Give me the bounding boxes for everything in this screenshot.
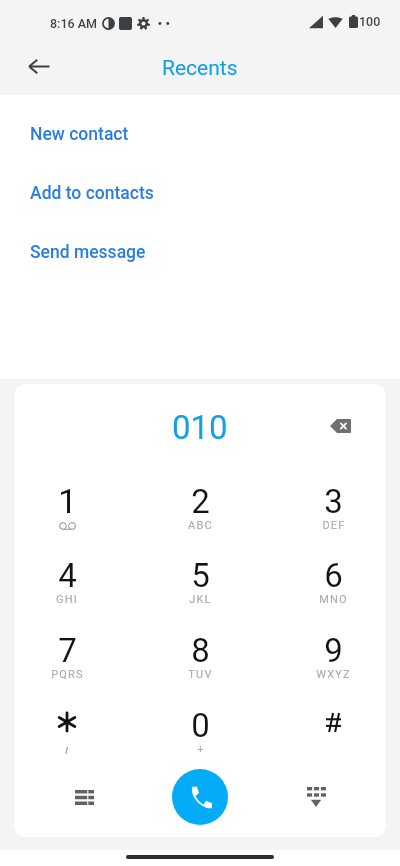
staticText: Send message [30,242,146,263]
button[interactable]: Send message [0,223,400,282]
button[interactable]: 4 [0,556,134,631]
button[interactable]: 3 [267,482,400,557]
staticText: 1 [58,482,77,521]
staticText: + [197,743,205,756]
staticText: MNO [319,593,348,606]
button[interactable]: New contact [0,105,400,164]
staticText: 7 [58,631,77,670]
button[interactable]: Call [172,769,228,825]
staticText: PQRS [51,668,84,681]
staticText: 9 [324,631,343,670]
staticText: 010 [172,408,228,447]
staticText: 0 [191,706,210,745]
button[interactable]: 0 [134,706,267,781]
staticText: 100 [359,14,381,29]
button[interactable]: 1 [0,482,134,557]
staticText: 2 [191,482,210,521]
button[interactable]: 8 [134,631,267,706]
button[interactable]: Add to contacts [0,164,400,223]
staticText: 5 [191,556,210,595]
button[interactable]: 2 [134,482,267,557]
staticText: Add to contacts [30,183,154,204]
button[interactable]: 6 [267,556,400,631]
button[interactable]: Backspace [318,403,363,448]
staticText: 8 [191,631,210,670]
staticText: 4 [58,556,77,595]
staticText: WXYZ [316,668,351,681]
staticText: Recents [162,56,238,81]
button[interactable]: Contacts [60,773,108,821]
button[interactable] [0,706,134,781]
staticText: 3 [324,482,343,521]
staticText: DEF [322,519,346,532]
staticText: 8:16 AM [50,16,98,31]
button[interactable]: Hide dialpad [292,773,340,821]
button[interactable]: 9 [267,631,400,706]
button[interactable]: Back [15,43,62,90]
button[interactable]: 5 [134,556,267,631]
button[interactable]: 7 [0,631,134,706]
staticText: ABC [188,519,213,532]
staticText: 6 [324,556,343,595]
button[interactable] [267,706,400,781]
staticText: TUV [188,668,213,681]
staticText: New contact [30,124,129,145]
staticText: GHI [56,593,78,606]
staticText: JKL [189,593,212,606]
